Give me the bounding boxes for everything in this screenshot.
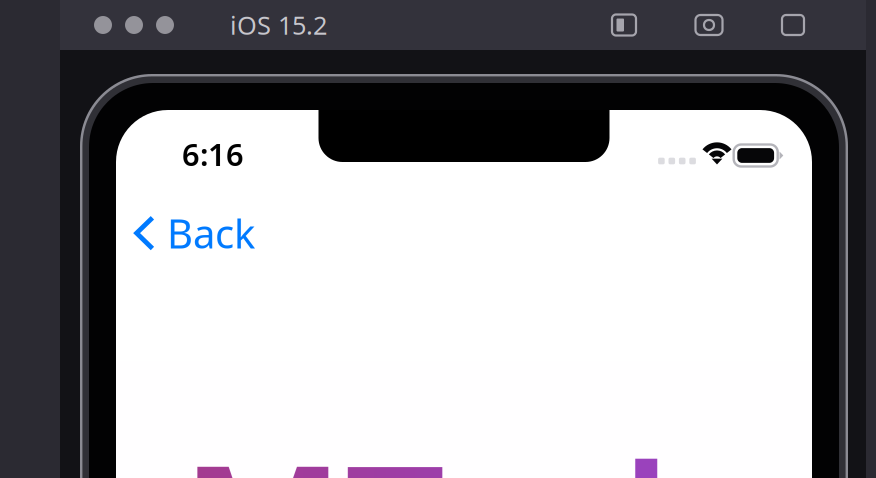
button[interactable]: Toggle sidebar: [612, 14, 636, 35]
staticText: 6:16: [182, 134, 244, 174]
staticText: iOS 15.2: [230, 8, 327, 42]
button[interactable]: Back: [120, 192, 269, 273]
button[interactable]: Screenshot: [782, 15, 804, 35]
staticText: Back: [167, 206, 255, 259]
button[interactable]: Record screen: [692, 14, 726, 36]
